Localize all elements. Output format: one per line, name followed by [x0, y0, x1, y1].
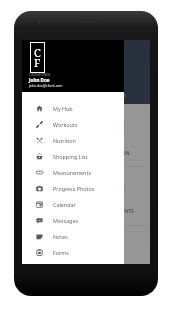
staticText: Measurements [53, 169, 91, 176]
button[interactable]: Progress Photos [22, 180, 124, 196]
button[interactable]: Forms [22, 244, 124, 260]
button[interactable]: Nutrition [22, 132, 124, 148]
button[interactable]: Measurements [22, 164, 124, 180]
staticText: C [34, 45, 41, 60]
staticText: MEASUREMENTS [93, 208, 134, 215]
staticText: Notes [53, 233, 68, 240]
staticText: Nutrition [53, 137, 76, 144]
staticText: F [34, 55, 41, 70]
staticText: john.doe@client.com [29, 83, 63, 88]
staticText: John Doe [29, 77, 50, 83]
staticText: Progress Photos [53, 185, 95, 192]
staticText: NUTRITION PLAN [86, 150, 130, 157]
button[interactable]: Calendar [22, 196, 124, 212]
staticText: Forms [53, 249, 69, 256]
button[interactable]: Notes [22, 228, 124, 244]
button[interactable]: Shopping List [22, 148, 124, 164]
staticText: My Hub [53, 105, 73, 112]
staticText: MY HUB [106, 93, 127, 100]
staticText: Messages [53, 217, 79, 224]
button[interactable]: Workouts [22, 116, 124, 132]
staticText: Workouts [53, 121, 78, 128]
staticText: Shopping List [53, 153, 88, 160]
button[interactable]: My Hub [22, 100, 124, 116]
staticText: Calendar [53, 201, 76, 208]
staticText: CUSTOM FITNESS [29, 73, 51, 77]
button[interactable]: Messages [22, 212, 124, 228]
